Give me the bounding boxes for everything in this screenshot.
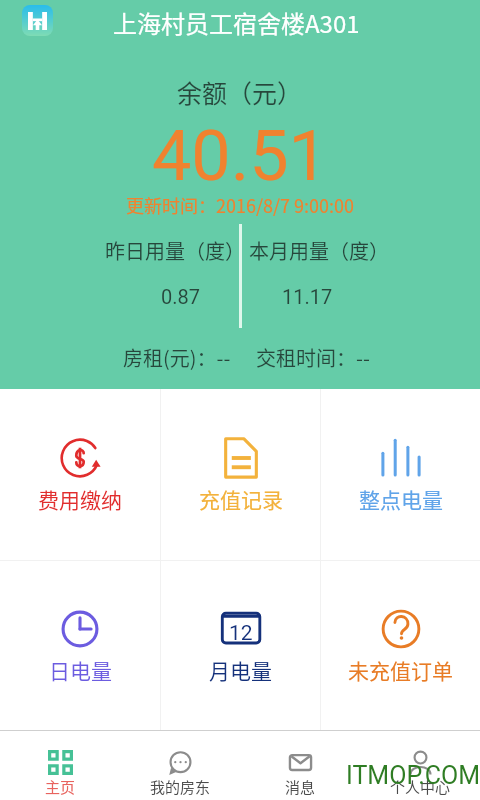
- button[interactable]: App logo: [22, 5, 53, 36]
- button[interactable]: 我的房东: [120, 731, 240, 800]
- staticText: 12: [229, 621, 253, 646]
- staticText: 0.87: [161, 285, 200, 308]
- staticText: 11.17: [282, 285, 333, 308]
- staticText: 整点电量: [359, 484, 443, 514]
- staticText: 本月用量（度）: [249, 236, 389, 265]
- staticText: 个人中心: [390, 776, 451, 798]
- staticText: 交租时间：--: [256, 343, 370, 372]
- staticText: 月电量: [209, 655, 272, 685]
- staticText: 费用缴纳: [38, 484, 122, 514]
- staticText: 主页: [45, 776, 76, 798]
- button[interactable]: 日电量: [0, 561, 160, 730]
- button[interactable]: 未充值订单: [321, 561, 480, 730]
- staticText: 消息: [285, 776, 316, 798]
- button[interactable]: 消息: [240, 731, 360, 800]
- staticText: 更新时间：2016/8/7 9:00:00: [126, 192, 355, 218]
- staticText: ITMOP.COM: [346, 761, 480, 790]
- staticText: 昨日用量（度）: [105, 236, 245, 265]
- button[interactable]: 个人中心: [360, 731, 480, 800]
- staticText: 上海村员工宿舍楼A301: [113, 5, 360, 40]
- button[interactable]: 充值记录: [161, 389, 320, 560]
- staticText: 余额（元）: [177, 74, 303, 110]
- staticText: 未充值订单: [348, 655, 453, 685]
- staticText: 我的房东: [150, 776, 211, 798]
- staticText: 充值记录: [199, 484, 283, 514]
- button[interactable]: 整点电量: [321, 389, 480, 560]
- staticText: 40.51: [152, 115, 328, 197]
- button[interactable]: 费用缴纳: [0, 389, 160, 560]
- button[interactable]: 12: [161, 561, 320, 730]
- staticText: 日电量: [49, 655, 112, 685]
- button[interactable]: 主页: [0, 731, 120, 800]
- staticText: 房租(元)：--: [123, 343, 231, 372]
